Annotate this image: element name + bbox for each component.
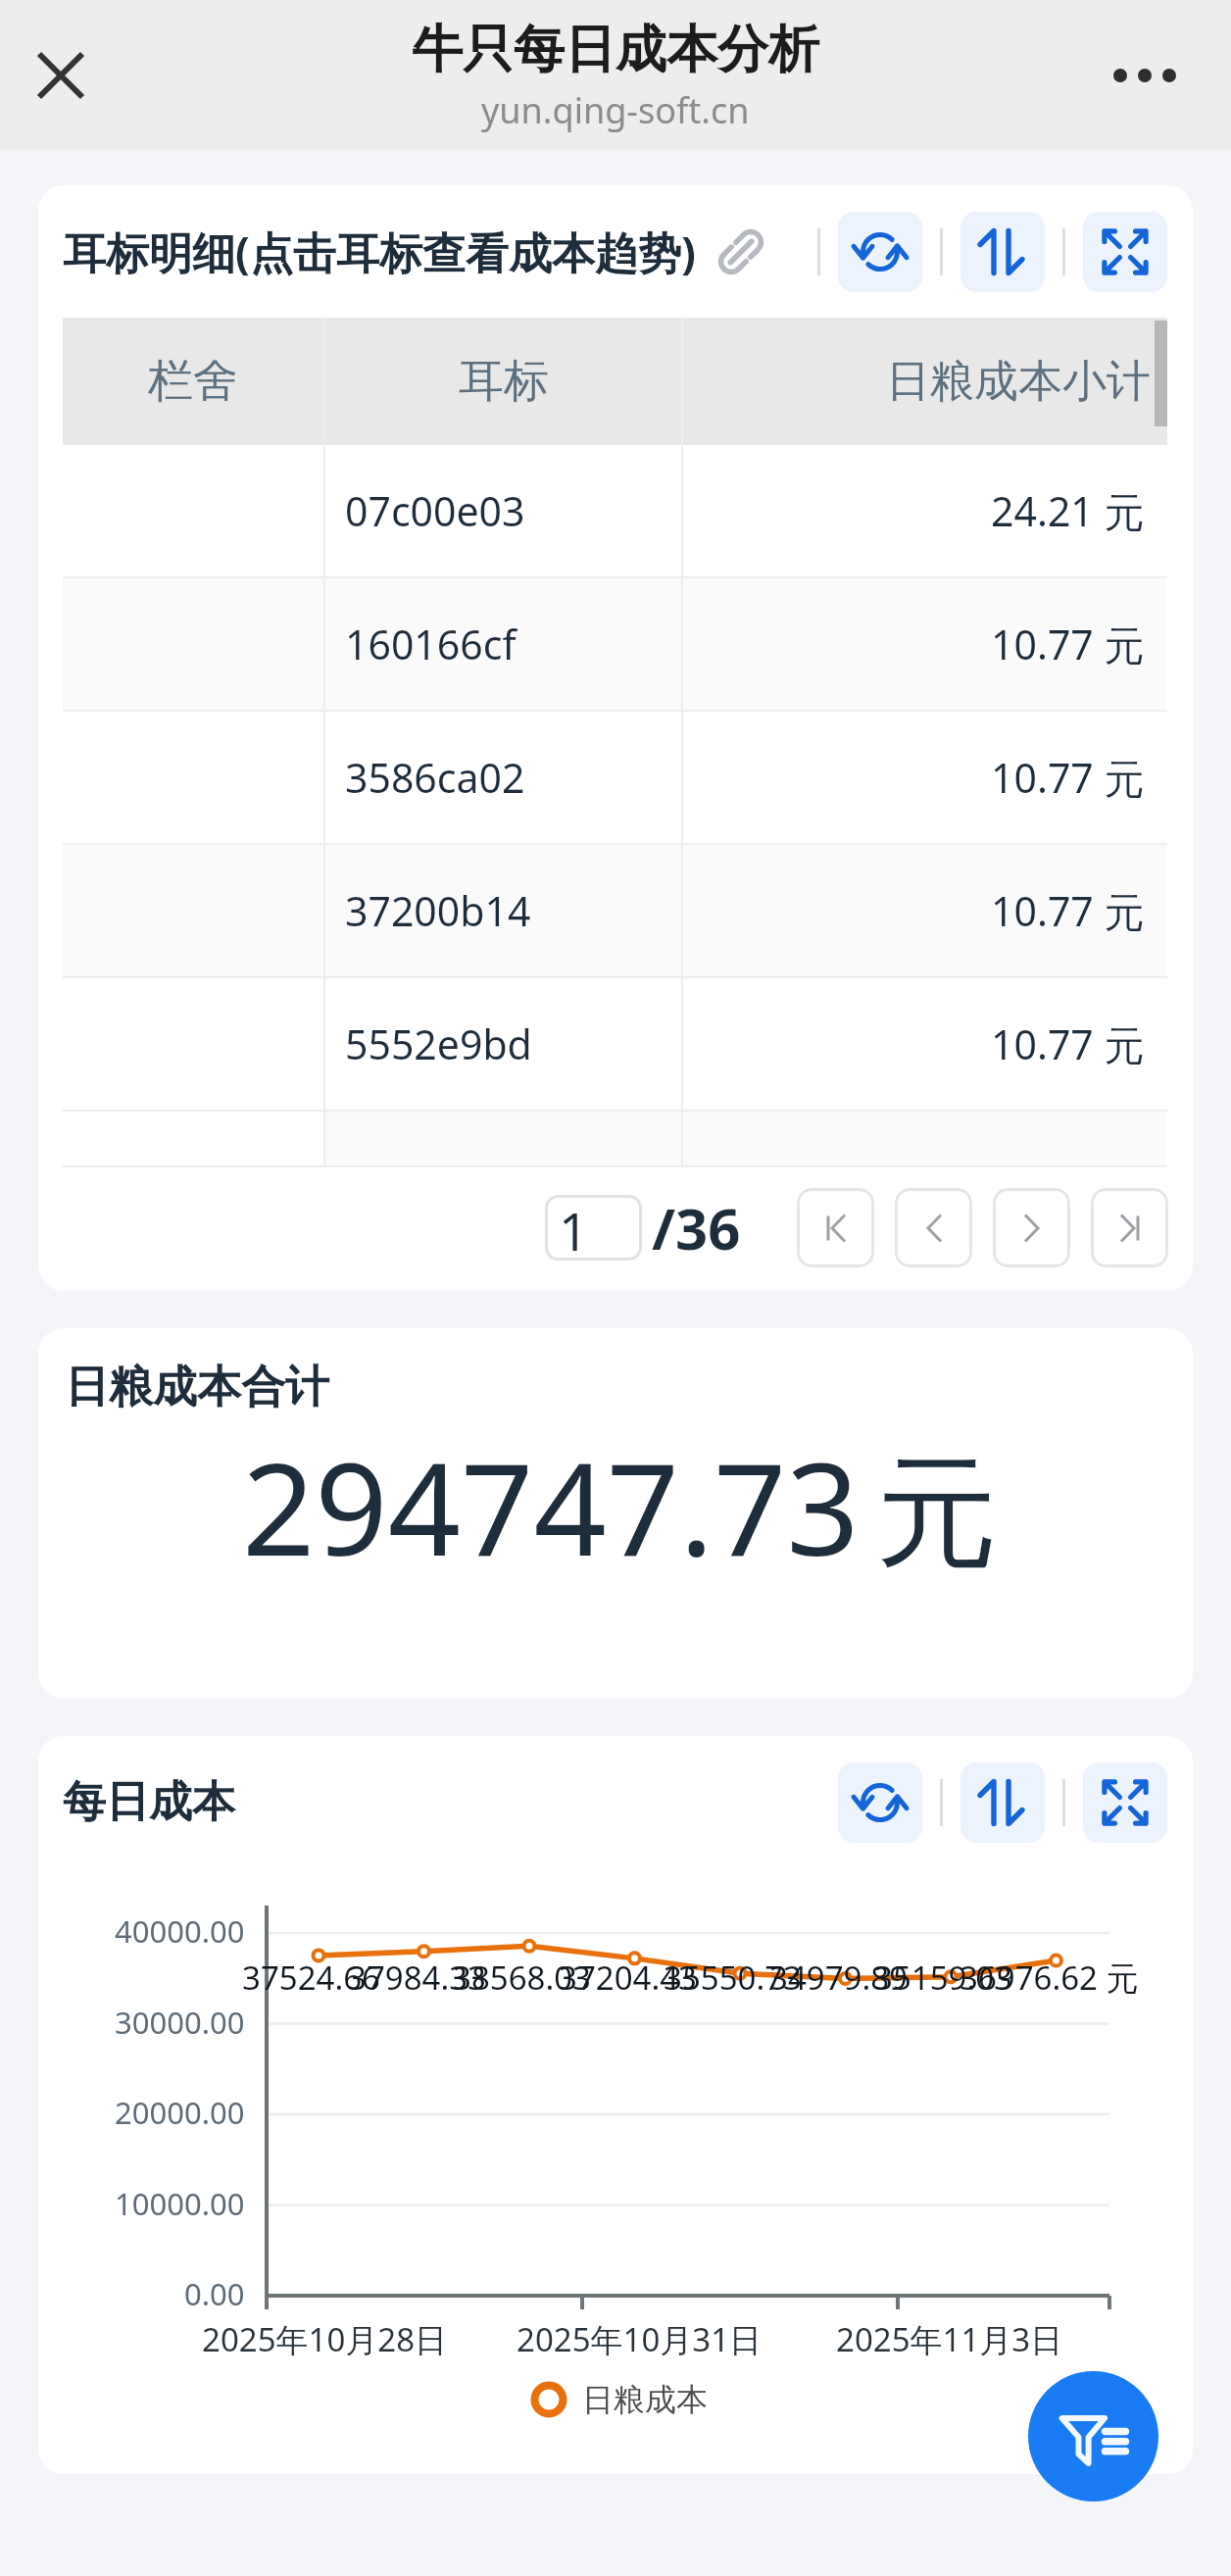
- staticText: 34979.89: [769, 1956, 908, 2000]
- staticText: 10.77 元: [991, 617, 1145, 671]
- staticText: 294747.73: [242, 1419, 860, 1593]
- staticText: 元: [876, 1438, 998, 1591]
- button[interactable]: Previous page: [895, 1188, 972, 1267]
- staticText: 2025年10月28日: [202, 2317, 448, 2361]
- staticText: 10000.00: [115, 2183, 245, 2224]
- button[interactable]: 3586ca02: [63, 712, 1167, 843]
- staticText: yun.qing-soft.cn: [481, 86, 750, 134]
- button[interactable]: First page: [797, 1188, 874, 1267]
- staticText: 日粮成本合计: [65, 1360, 329, 1415]
- staticText: 38568.03: [453, 1956, 591, 2000]
- button[interactable]: 5552e9bd: [63, 978, 1167, 1110]
- staticText: 1: [559, 1195, 589, 1261]
- button[interactable]: Filter: [1028, 2371, 1158, 2502]
- staticText: 37200b14: [345, 883, 531, 938]
- button[interactable]: Fullscreen: [1083, 212, 1167, 292]
- staticText: 牛只每日成本分析: [412, 18, 819, 82]
- staticText: 日粮成本小计: [886, 354, 1151, 410]
- staticText: 耳标明细(点击耳标查看成本趋势): [63, 223, 696, 281]
- staticText: 40000.00: [115, 1910, 245, 1952]
- button[interactable]: 37200b14: [63, 845, 1167, 976]
- staticText: 0.00: [184, 2273, 245, 2314]
- staticText: 日粮成本: [582, 2380, 708, 2419]
- staticText: /36: [652, 1189, 741, 1266]
- staticText: 07c00e03: [345, 483, 525, 538]
- staticText: 37524.66: [242, 1956, 380, 2000]
- button[interactable]: Next page: [993, 1188, 1070, 1267]
- button[interactable]: Fullscreen: [1083, 1762, 1167, 1843]
- button[interactable]: Sort: [960, 1762, 1045, 1843]
- staticText: 35159.03: [874, 1956, 1012, 2000]
- staticText: 20000.00: [115, 2092, 245, 2133]
- button[interactable]: Close: [10, 25, 112, 126]
- button[interactable]: More options: [1091, 25, 1199, 126]
- button[interactable]: 160166cf: [63, 578, 1167, 710]
- button[interactable]: 1: [545, 1195, 642, 1261]
- button[interactable]: Last page: [1091, 1188, 1168, 1267]
- staticText: 37204.43: [559, 1956, 697, 2000]
- staticText: 160166cf: [345, 617, 517, 671]
- button[interactable]: Refresh: [838, 1762, 922, 1843]
- staticText: 每日成本: [63, 1775, 235, 1829]
- staticText: 24.21 元: [991, 483, 1145, 538]
- button[interactable]: Link: [714, 224, 768, 279]
- button[interactable]: 07c00e03: [63, 445, 1167, 576]
- staticText: 10.77 元: [991, 1016, 1145, 1071]
- staticText: 10.77 元: [991, 750, 1145, 805]
- staticText: 耳标: [459, 353, 549, 410]
- staticText: 30000.00: [115, 2002, 245, 2043]
- staticText: 2025年10月31日: [517, 2317, 763, 2361]
- button[interactable]: Sort: [960, 212, 1045, 292]
- staticText: 5552e9bd: [345, 1016, 532, 1071]
- staticText: 37984.33: [348, 1956, 486, 2000]
- staticText: 3586ca02: [345, 750, 525, 805]
- staticText: 10.77 元: [991, 883, 1145, 938]
- staticText: 2025年11月3日: [836, 2317, 1063, 2361]
- button[interactable]: Refresh: [838, 212, 922, 292]
- staticText: 35550.73: [664, 1956, 802, 2000]
- staticText: 栏舍: [148, 353, 238, 410]
- staticText: 36976.62 元: [960, 1956, 1139, 2000]
